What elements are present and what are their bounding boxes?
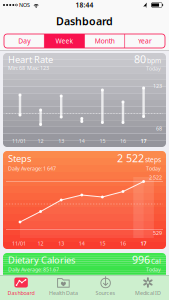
staticText: Cal [151,257,161,265]
staticText: Daily Average: 851.67 [8,266,59,273]
staticText: 2 522 [117,151,144,165]
staticText: bpm [147,56,161,65]
staticText: 15 [99,240,105,247]
staticText: 17 [141,240,147,247]
staticText: Month [95,37,115,45]
staticText: Medical ID [135,289,161,297]
staticText: 16 [120,137,126,145]
staticText: 123 [153,82,162,90]
staticText: Dietary Calories [8,254,75,266]
staticText: 11/01 [12,137,26,145]
staticText: 68 [156,125,162,132]
staticText: 529 [153,229,162,237]
button[interactable]: Medical ID [0,0,169,300]
staticText: 11/01 [12,240,26,247]
staticText: Daily Average: 1 647 [8,165,56,172]
staticText: Steps [8,152,31,165]
staticText: Sources [96,289,116,297]
button[interactable] [3,151,166,249]
staticText: 80 [134,52,146,66]
staticText: Day [18,37,30,45]
staticText: 14 [79,137,85,145]
staticText: 996 [132,252,150,267]
staticText: 17 [141,137,147,145]
staticText: Today [146,165,161,172]
button[interactable] [3,253,166,283]
staticText: Dashboard [8,289,35,297]
staticText: Year [138,37,152,45]
staticText: Today [146,65,161,72]
button[interactable]: Dashboard [0,0,169,300]
staticText: 12 [38,137,44,145]
staticText: Heart Rate [8,53,53,66]
staticText: 18:44 [75,1,93,9]
staticText: Dashboard [56,14,113,28]
button[interactable]: Health Data [0,0,169,300]
staticText: Today [146,266,161,273]
staticText: Week [55,37,73,45]
staticText: 2 522 [149,174,162,181]
button[interactable]: Day [4,34,44,48]
button[interactable]: Week [44,34,84,48]
button[interactable]: Year [125,34,165,48]
staticText: 13 [58,137,64,145]
staticText: Health Data [49,289,78,297]
button[interactable] [3,53,166,147]
staticText: 12 [38,240,44,247]
staticText: Min: 68 Max: 123 [8,64,49,72]
staticText: 15 [99,137,105,145]
staticText: 13 [58,240,64,247]
button[interactable]: Sources [0,0,169,300]
staticText: steps [145,155,161,164]
staticText: 14 [79,240,85,247]
button[interactable]: Month [84,34,125,48]
staticText: NOS [19,1,30,9]
staticText: 16 [120,240,126,247]
